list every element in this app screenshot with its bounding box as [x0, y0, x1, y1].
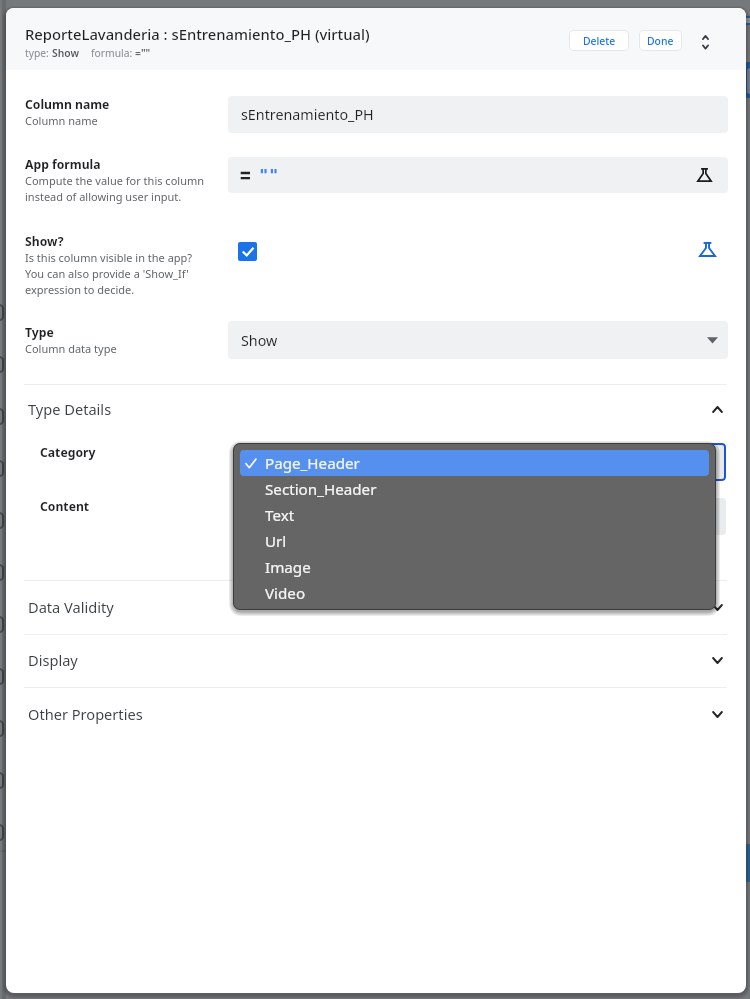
button[interactable]: Text — [240, 502, 709, 528]
staticText: App formula — [25, 156, 101, 173]
staticText: Other Properties — [28, 704, 143, 724]
button[interactable]: Url — [240, 528, 709, 554]
button[interactable]: Formula editor — [699, 242, 716, 257]
staticText: Done — [647, 34, 674, 48]
button[interactable]: Delete — [569, 30, 629, 51]
button[interactable]: Done — [639, 30, 682, 51]
staticText: Type Details — [28, 399, 112, 419]
staticText: Show — [52, 46, 79, 60]
staticText: Category — [40, 444, 96, 461]
button[interactable]: Other Properties — [6, 688, 745, 740]
button[interactable]: Type Details — [6, 383, 745, 435]
staticText: ReporteLavanderia : sEntrenamiento_PH (v… — [25, 24, 370, 44]
button[interactable]: Video — [240, 580, 709, 606]
button[interactable]: Image — [240, 554, 709, 580]
staticText: Page_Header — [265, 453, 360, 474]
staticText: type: — [25, 46, 52, 60]
button[interactable]: sEntrenamiento_PH — [228, 96, 728, 133]
button[interactable] — [680, 498, 726, 535]
staticText: expression to decide. — [25, 282, 135, 297]
staticText: Data Validity — [28, 597, 114, 617]
button[interactable]: Display — [6, 634, 745, 686]
button[interactable] — [228, 157, 728, 193]
staticText: Content — [40, 498, 90, 515]
staticText: Column name — [25, 96, 110, 113]
button[interactable]: Page_Header — [240, 450, 709, 476]
button[interactable]: Show toggle — [238, 242, 257, 261]
button[interactable] — [686, 443, 726, 481]
staticText: Display — [28, 650, 78, 670]
button[interactable]: Reorder — [694, 31, 716, 53]
staticText: sEntrenamiento_PH — [241, 105, 374, 124]
staticText: Is this column visible in the app? — [25, 250, 193, 265]
staticText: Section_Header — [265, 479, 377, 500]
staticText: Text — [265, 505, 295, 526]
button[interactable]: Data Validity — [6, 581, 745, 633]
staticText: Type — [25, 324, 54, 341]
staticText: Image — [265, 557, 311, 578]
staticText: instead of allowing user input. — [25, 189, 182, 204]
button[interactable]: Section_Header — [240, 476, 709, 502]
staticText: You can also provide a 'Show_If' — [25, 266, 189, 281]
staticText: Compute the value for this column — [25, 173, 205, 188]
staticText: Column name — [25, 113, 98, 128]
staticText: Url — [265, 531, 287, 552]
staticText: ="" — [135, 46, 151, 60]
staticText: Column data type — [25, 341, 117, 356]
button[interactable]: Show — [228, 321, 728, 359]
staticText: Show? — [25, 233, 64, 250]
staticText: formula: — [91, 46, 135, 60]
staticText: Delete — [583, 34, 616, 48]
staticText: Video — [265, 583, 306, 604]
staticText: Show — [241, 331, 278, 350]
